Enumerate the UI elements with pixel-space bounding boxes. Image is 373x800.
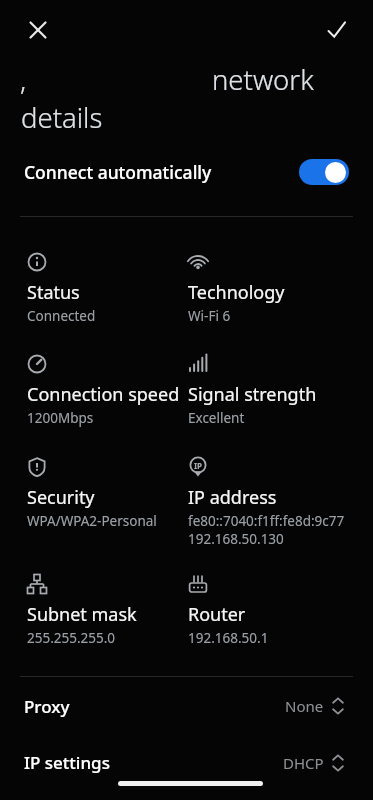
staticText: IP [194, 460, 203, 471]
staticText: Router [188, 602, 246, 627]
staticText: fe80::7040:f1ff:fe8d:9c77 [188, 512, 345, 530]
button[interactable]: Connection speed [27, 354, 180, 427]
staticText: Technology [188, 280, 285, 305]
button[interactable]: Connect automatically [0, 142, 373, 202]
button[interactable]: IP [188, 457, 345, 548]
button[interactable]: Signal strength [188, 354, 317, 427]
staticText: Signal strength [188, 382, 317, 407]
staticText: DHCP [283, 753, 324, 773]
button[interactable]: Security [27, 457, 157, 530]
staticText: Security [27, 485, 95, 510]
button[interactable]: Status [27, 252, 96, 325]
staticText: details [21, 99, 103, 136]
staticText: Connected [27, 307, 96, 325]
button[interactable]: IP settings [0, 735, 373, 790]
button[interactable] [28, 20, 47, 39]
button[interactable]: Technology [188, 252, 285, 325]
staticText: Connect automatically [24, 160, 212, 184]
staticText: 192.168.50.1 [188, 629, 269, 647]
button[interactable]: Router [188, 574, 269, 647]
button[interactable]: Subnet mask [27, 574, 137, 647]
staticText: 255.255.255.0 [27, 629, 116, 647]
staticText: Proxy [24, 695, 70, 718]
staticText: Status [27, 280, 80, 305]
staticText: IP address [188, 485, 277, 510]
staticText: WPA/WPA2-Personal [27, 512, 157, 530]
staticText: Subnet mask [27, 602, 137, 627]
staticText: 1200Mbps [27, 409, 94, 427]
staticText: 192.168.50.130 [188, 530, 284, 548]
button[interactable]: Proxy [0, 677, 373, 735]
staticText: network [212, 61, 314, 98]
staticText: Wi-Fi 6 [188, 307, 231, 325]
staticText: None [285, 696, 324, 716]
staticText: Connection speed [27, 382, 180, 407]
button[interactable] [324, 17, 348, 41]
staticText: IP settings [24, 751, 110, 774]
staticText: , [20, 61, 27, 98]
staticText: Excellent [188, 409, 245, 427]
